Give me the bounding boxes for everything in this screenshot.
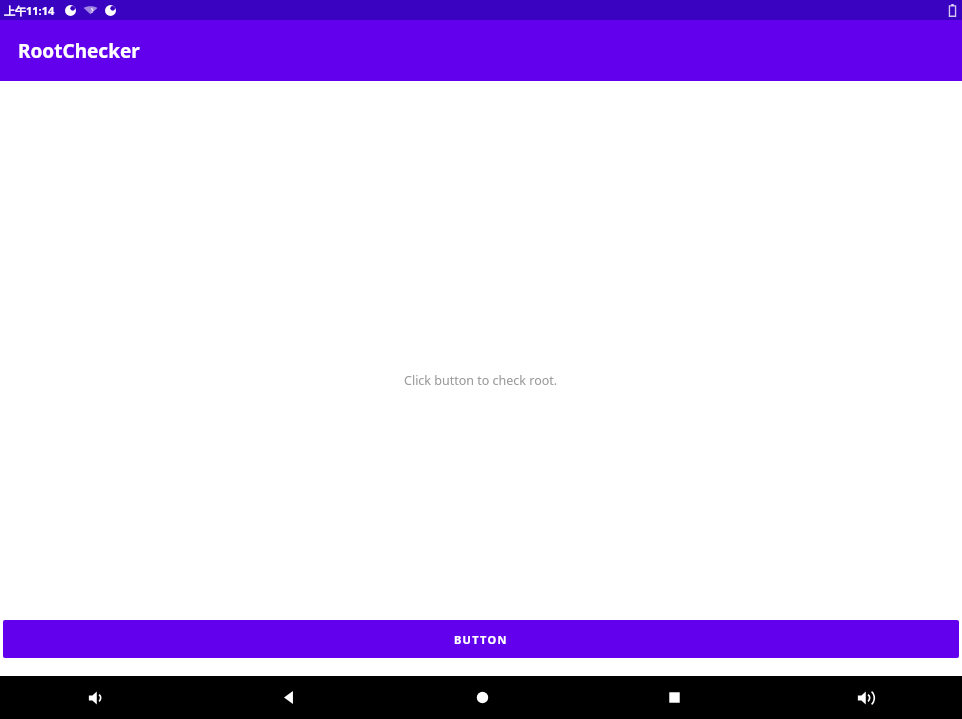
button[interactable]: BUTTON [3,620,959,658]
button[interactable]: Back [193,676,386,719]
staticText: Click button to check root. [404,372,558,389]
staticText: 上午11:14 [4,3,55,18]
button[interactable]: Volume down [0,676,193,719]
button[interactable]: Recent apps [578,676,770,719]
staticText: RootChecker [18,38,140,64]
button[interactable]: Home [386,676,578,719]
staticText: BUTTON [454,632,508,647]
button[interactable]: Volume up [770,676,962,719]
